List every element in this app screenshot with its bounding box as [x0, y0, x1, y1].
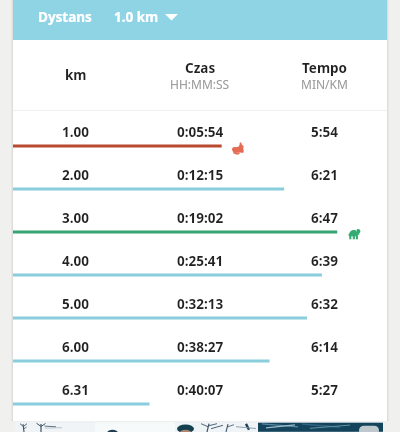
staticText: 1.00 — [62, 123, 89, 141]
button[interactable]: 1.00 — [13, 111, 387, 154]
staticText: HH:MM:SS — [170, 76, 230, 92]
staticText: 6:14 — [311, 338, 338, 356]
button[interactable]: 3.00 — [13, 197, 387, 240]
staticText: 6:39 — [311, 252, 338, 270]
staticText: Tempo — [302, 59, 348, 77]
staticText: 4.00 — [62, 252, 89, 270]
staticText: 2.00 — [62, 166, 89, 184]
staticText: MIN/KM — [301, 76, 348, 92]
button[interactable]: 5.00 — [13, 283, 387, 326]
staticText: 5:27 — [311, 381, 338, 399]
staticText: 0:32:13 — [177, 295, 224, 313]
staticText: 0:05:54 — [177, 123, 224, 141]
button[interactable]: 2.00 — [13, 154, 387, 197]
staticText: km — [65, 66, 87, 84]
staticText: 6:47 — [311, 209, 338, 227]
staticText: 0:12:15 — [177, 166, 224, 184]
staticText: 0:40:07 — [177, 381, 224, 399]
staticText: 5:54 — [311, 123, 338, 141]
staticText: Czas — [185, 59, 216, 77]
button[interactable]: Photos — [0, 421, 400, 432]
staticText: 6.00 — [62, 338, 89, 356]
button[interactable]: 6.31 — [13, 369, 387, 412]
button[interactable]: 4.00 — [13, 240, 387, 283]
staticText: 0:19:02 — [177, 209, 224, 227]
staticText: Dystans — [38, 8, 92, 26]
staticText: 1.0 km — [114, 8, 159, 26]
staticText: 6:32 — [311, 295, 338, 313]
staticText: 3.00 — [62, 209, 89, 227]
button[interactable]: Dystans — [13, 0, 387, 40]
staticText: 6.31 — [62, 381, 89, 399]
staticText: 5.00 — [62, 295, 89, 313]
staticText: 0:38:27 — [177, 338, 224, 356]
staticText: 6:21 — [311, 166, 338, 184]
staticText: 0:25:41 — [177, 252, 224, 270]
button[interactable]: 6.00 — [13, 326, 387, 369]
